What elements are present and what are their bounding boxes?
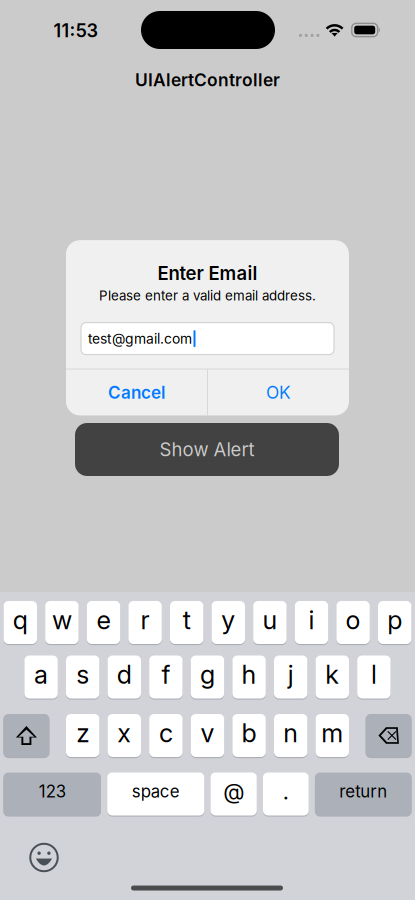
button[interactable]: a: [24, 655, 58, 698]
staticText: d: [117, 659, 132, 690]
button[interactable]: v: [191, 714, 224, 757]
staticText: w: [52, 605, 72, 635]
button[interactable]: Emoji: [27, 840, 61, 874]
button[interactable]: z: [66, 714, 99, 757]
staticText: y: [221, 605, 235, 635]
button[interactable]: return: [315, 772, 412, 815]
button[interactable]: x: [108, 714, 141, 757]
staticText: v: [200, 718, 214, 748]
button[interactable]: i: [295, 601, 328, 644]
staticText: g: [200, 659, 215, 690]
staticText: return: [339, 781, 387, 802]
button[interactable]: k: [316, 655, 349, 698]
button[interactable]: s: [66, 655, 99, 698]
button[interactable]: Delete: [366, 714, 412, 757]
button[interactable]: q: [4, 601, 37, 644]
button[interactable]: o: [336, 601, 370, 644]
staticText: k: [325, 659, 339, 690]
button[interactable]: 123: [3, 772, 101, 815]
staticText: test@gmail.com: [88, 330, 192, 347]
button[interactable]: l: [357, 655, 391, 698]
button[interactable]: Shift: [3, 714, 49, 757]
button[interactable]: .: [263, 772, 309, 815]
staticText: Enter Email: [157, 262, 257, 284]
button[interactable]: d: [108, 655, 141, 698]
staticText: e: [96, 605, 110, 635]
staticText: c: [159, 718, 173, 748]
button[interactable]: e: [87, 601, 120, 644]
button[interactable]: c: [149, 714, 183, 757]
staticText: x: [117, 718, 131, 748]
staticText: h: [242, 659, 257, 690]
staticText: f: [161, 659, 170, 690]
staticText: n: [283, 718, 298, 748]
button[interactable]: r: [128, 601, 162, 644]
button[interactable]: @: [210, 772, 257, 815]
staticText: q: [13, 605, 28, 635]
button[interactable]: h: [232, 655, 266, 698]
button[interactable]: w: [45, 601, 79, 644]
staticText: Show Alert: [159, 438, 254, 461]
staticText: Please enter a valid email address.: [99, 288, 316, 304]
staticText: t: [183, 605, 191, 635]
button[interactable]: j: [274, 655, 307, 698]
staticText: .: [283, 778, 289, 805]
staticText: l: [371, 659, 377, 690]
button[interactable]: y: [212, 601, 245, 644]
staticText: 123: [39, 781, 66, 802]
staticText: j: [288, 659, 294, 690]
staticText: i: [308, 605, 314, 635]
staticText: space: [132, 781, 180, 802]
staticText: UIAlertController: [135, 69, 280, 90]
staticText: u: [262, 605, 277, 635]
staticText: z: [76, 718, 89, 748]
button[interactable]: space: [107, 772, 204, 815]
button[interactable]: n: [274, 714, 307, 757]
button[interactable]: Cancel: [66, 369, 207, 415]
button[interactable]: f: [149, 655, 183, 698]
button[interactable]: u: [253, 601, 287, 644]
button[interactable]: t: [170, 601, 203, 644]
staticText: @: [223, 778, 244, 805]
staticText: m: [321, 718, 343, 748]
staticText: Cancel: [108, 382, 165, 403]
button[interactable]: OK: [208, 369, 349, 415]
button[interactable]: Show Alert: [75, 423, 339, 476]
staticText: p: [387, 605, 402, 635]
button[interactable]: p: [378, 601, 411, 644]
staticText: b: [242, 718, 257, 748]
button[interactable]: m: [316, 714, 349, 757]
staticText: s: [76, 659, 89, 690]
staticText: OK: [266, 382, 291, 403]
button[interactable]: b: [232, 714, 266, 757]
button[interactable]: g: [191, 655, 224, 698]
staticText: o: [346, 605, 361, 635]
staticText: a: [34, 659, 48, 690]
staticText: 11:53: [53, 20, 98, 41]
staticText: r: [141, 605, 150, 635]
